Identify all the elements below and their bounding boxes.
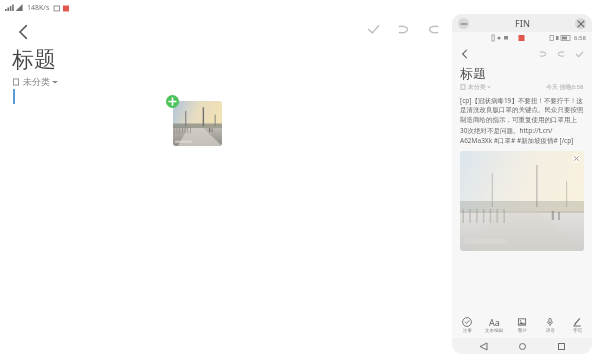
button[interactable]: Done xyxy=(358,14,388,44)
button[interactable]: Add xyxy=(166,95,179,108)
staticText: 148K/s xyxy=(27,3,50,13)
staticText: 文本编辑 xyxy=(485,328,503,334)
button[interactable]: Recents xyxy=(553,338,569,354)
button[interactable]: 手写 xyxy=(564,316,590,334)
button[interactable]: Aa xyxy=(481,316,507,334)
staticText: 未分类 xyxy=(468,83,486,91)
button[interactable]: Close xyxy=(575,18,586,29)
staticText: 今天 傍晚6:58 xyxy=(546,83,584,91)
staticText: 注事 xyxy=(463,328,472,334)
button[interactable]: Redo xyxy=(552,45,570,63)
button[interactable]: 图片 xyxy=(509,316,535,334)
button[interactable]: Home xyxy=(514,338,530,354)
staticText: 标题 xyxy=(12,46,56,74)
button[interactable]: Back xyxy=(10,18,38,46)
button[interactable]: 语音 xyxy=(537,316,563,334)
staticText: 未分类 xyxy=(23,76,50,87)
button[interactable]: 注事 xyxy=(454,316,480,334)
staticText: 手写 xyxy=(573,328,582,334)
staticText: [cp]【冠状病毒19】不要扭！不要拧干！这是清洗改良版口罩的关键点。民众只要按… xyxy=(460,96,584,145)
staticText: 语音 xyxy=(546,328,555,334)
staticText: 标题 xyxy=(460,65,486,81)
staticText: Aa xyxy=(489,316,500,327)
button[interactable]: Inserted photo xyxy=(173,101,222,146)
button[interactable]: Attached photo xyxy=(460,151,584,251)
button[interactable]: Minimize xyxy=(458,18,469,29)
button[interactable]: Done xyxy=(570,45,588,63)
staticText: FIN xyxy=(515,17,530,29)
button[interactable]: 未分类 xyxy=(12,76,58,87)
button[interactable]: Remove photo xyxy=(572,154,581,163)
button[interactable]: Redo xyxy=(418,14,448,44)
button[interactable]: Back xyxy=(475,338,491,354)
button[interactable]: Back xyxy=(456,45,474,63)
staticText: 图片 xyxy=(518,328,527,334)
button[interactable]: Undo xyxy=(388,14,418,44)
button[interactable]: 未分类 xyxy=(468,83,486,91)
staticText: 6:58 xyxy=(574,34,586,42)
button[interactable]: Undo xyxy=(534,45,552,63)
